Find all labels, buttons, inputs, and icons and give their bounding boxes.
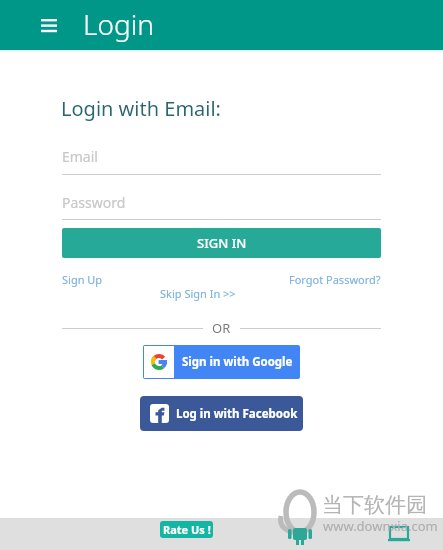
button[interactable]: Skip Sign In >> xyxy=(160,286,236,301)
staticText: 当下软件园 xyxy=(322,492,427,518)
staticText: Email xyxy=(62,147,98,166)
staticText: Password xyxy=(62,193,126,212)
staticText: www.downxia.com xyxy=(323,517,438,535)
staticText: Log in with Facebook xyxy=(176,406,298,422)
button[interactable]: Sign in with Google xyxy=(143,345,300,379)
staticText: Login xyxy=(83,5,154,43)
button[interactable]: Sign Up xyxy=(62,272,103,287)
staticText: OR xyxy=(212,319,231,337)
staticText: Login with Email: xyxy=(61,95,221,122)
staticText: SIGN IN xyxy=(197,234,247,252)
staticText: Rate Us ! xyxy=(163,522,211,537)
staticText: Sign in with Google xyxy=(182,354,293,370)
button[interactable]: Rate Us ! xyxy=(160,521,213,538)
button[interactable]: Log in with Facebook xyxy=(140,396,303,431)
button[interactable]: Menu xyxy=(36,13,62,37)
button[interactable]: SIGN IN xyxy=(62,228,381,258)
button[interactable]: Forgot Password? xyxy=(289,272,381,287)
